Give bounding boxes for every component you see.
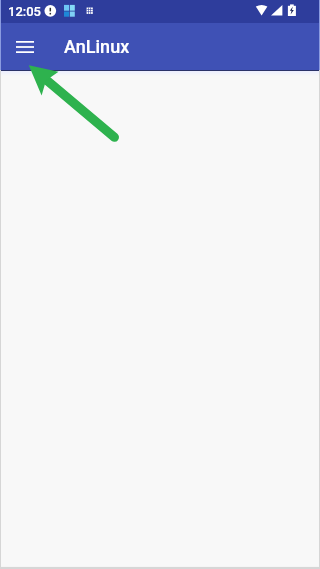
staticText: 12:05 (8, 4, 41, 19)
button[interactable]: Open navigation drawer (9, 31, 41, 63)
staticText: AnLinux (64, 36, 130, 57)
